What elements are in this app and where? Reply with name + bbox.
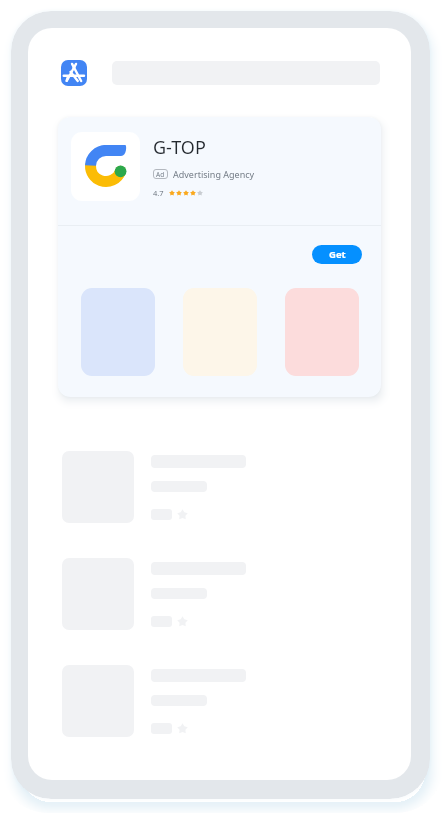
button[interactable] bbox=[62, 558, 246, 630]
button[interactable]: App Store bbox=[61, 60, 87, 86]
button[interactable] bbox=[62, 451, 246, 523]
staticText: G-TOP bbox=[153, 135, 206, 160]
button[interactable]: G-TOP bbox=[58, 117, 381, 397]
button[interactable] bbox=[81, 288, 155, 376]
button[interactable]: Get bbox=[312, 245, 362, 264]
staticText: Ad bbox=[156, 170, 165, 179]
button[interactable] bbox=[62, 665, 246, 737]
button[interactable] bbox=[285, 288, 359, 376]
staticText: Advertising Agency bbox=[173, 168, 255, 180]
staticText: Get bbox=[329, 248, 346, 261]
staticText: 4.7 bbox=[153, 188, 164, 198]
